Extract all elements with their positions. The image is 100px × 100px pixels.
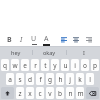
button[interactable]: Backspace	[86, 87, 99, 99]
button[interactable]: i	[71, 59, 79, 71]
button[interactable]: s	[16, 73, 24, 85]
staticText: l	[89, 75, 91, 84]
button[interactable]: f	[36, 73, 44, 85]
staticText: B	[7, 35, 12, 45]
staticText: z	[18, 89, 22, 98]
button[interactable]: p	[91, 59, 99, 71]
staticText: s	[18, 75, 22, 84]
staticText: c	[38, 89, 42, 98]
button[interactable]: y	[51, 59, 59, 71]
button[interactable]: d	[26, 73, 34, 85]
button[interactable]: t	[41, 59, 49, 71]
button[interactable]: I	[67, 47, 100, 58]
staticText: w	[12, 61, 18, 70]
button[interactable]: l	[86, 73, 94, 85]
button[interactable]: n	[66, 87, 74, 99]
staticText: x	[28, 89, 32, 98]
staticText: f	[39, 75, 42, 84]
staticText: hey	[11, 49, 21, 56]
staticText: p	[93, 61, 97, 70]
button[interactable]: a	[6, 73, 14, 85]
staticText: A	[44, 34, 49, 44]
button[interactable]: m	[76, 87, 84, 99]
staticText: i	[74, 61, 76, 70]
staticText: v	[48, 89, 52, 98]
staticText: d	[28, 75, 32, 84]
button[interactable]: u	[61, 59, 69, 71]
staticText: q	[3, 61, 7, 70]
staticText: r	[34, 61, 37, 70]
staticText: U	[31, 34, 37, 44]
staticText: I	[83, 49, 85, 56]
button[interactable]: o	[81, 59, 89, 71]
button[interactable]: e	[21, 59, 29, 71]
staticText: k	[78, 75, 82, 84]
staticText: o	[83, 61, 87, 70]
button[interactable]: j	[66, 73, 74, 85]
button[interactable]: w	[11, 59, 19, 71]
button[interactable]: Text color	[40, 33, 53, 46]
button[interactable]: v	[46, 87, 54, 99]
button[interactable]: Italic	[15, 33, 28, 46]
staticText: a	[8, 75, 12, 84]
button[interactable]: Align center	[69, 33, 82, 46]
staticText: g	[48, 75, 52, 84]
button[interactable]: g	[46, 73, 54, 85]
staticText: I	[20, 35, 23, 45]
button[interactable]: x	[26, 87, 34, 99]
button[interactable]: Align right	[82, 33, 95, 46]
button[interactable]: q	[1, 59, 9, 71]
button[interactable]: z	[16, 87, 24, 99]
button[interactable]: hey	[0, 47, 32, 58]
button[interactable]: h	[56, 73, 64, 85]
staticText: e	[23, 61, 27, 70]
staticText: h	[58, 75, 63, 84]
staticText: t	[44, 61, 47, 70]
button[interactable]: Align left	[57, 33, 70, 46]
button[interactable]: r	[31, 59, 39, 71]
staticText: u	[63, 61, 68, 70]
staticText: b	[58, 89, 62, 98]
staticText: j	[69, 75, 71, 84]
button[interactable]: k	[76, 73, 84, 85]
button[interactable]: Underline	[27, 33, 40, 46]
button[interactable]: Shift	[1, 87, 14, 99]
staticText: m	[77, 89, 84, 98]
button[interactable]: okay	[33, 47, 66, 58]
button[interactable]: Bold	[3, 33, 16, 46]
staticText: okay	[43, 49, 56, 56]
button[interactable]: b	[56, 87, 64, 99]
button[interactable]: c	[36, 87, 44, 99]
staticText: y	[53, 61, 57, 70]
staticText: n	[68, 89, 73, 98]
